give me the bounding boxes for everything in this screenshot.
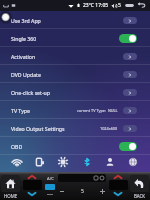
button[interactable]: DVD Update bbox=[0, 65, 150, 83]
staticText: Activation bbox=[11, 53, 36, 60]
button[interactable]: Screen cast bbox=[33, 155, 47, 169]
button[interactable]: BACK bbox=[129, 172, 150, 200]
staticText: 1024x600 bbox=[100, 126, 118, 131]
button[interactable]: Video Output Settings bbox=[0, 119, 150, 137]
staticText: current TV Type: NULL bbox=[77, 108, 118, 113]
button[interactable]: Profile bbox=[126, 155, 140, 169]
button[interactable]: TV Type bbox=[0, 101, 150, 119]
button[interactable]: Passenger temperature down bbox=[109, 190, 127, 198]
button[interactable]: Account bbox=[103, 155, 117, 169]
button[interactable]: Recent apps bbox=[125, 1, 134, 10]
button[interactable]: HOME bbox=[0, 172, 21, 200]
button[interactable]: Wi-Fi bbox=[10, 155, 24, 169]
staticText: 5 bbox=[118, 2, 121, 9]
staticText: 5 bbox=[81, 188, 84, 195]
staticText: Video Output Settings bbox=[11, 125, 65, 132]
button[interactable]: OBD bbox=[0, 137, 150, 155]
button[interactable]: A/C bbox=[43, 172, 57, 200]
staticText: A/C bbox=[47, 176, 54, 182]
button[interactable]: Driver temperature up bbox=[23, 173, 41, 180]
button[interactable]: Use 3rd App bbox=[0, 11, 150, 29]
button[interactable]: Back bbox=[137, 1, 146, 10]
button[interactable]: Brightness bbox=[56, 155, 70, 169]
staticText: TV Type bbox=[11, 107, 30, 114]
button[interactable]: Fan up bbox=[98, 187, 107, 196]
button[interactable]: Activation bbox=[0, 47, 150, 65]
staticText: Single 360 bbox=[11, 35, 37, 42]
button[interactable]: Single 360 bbox=[0, 29, 150, 47]
staticText: OBD bbox=[11, 143, 23, 150]
staticText: 23°C 17:05 bbox=[83, 2, 109, 9]
staticText: HOME bbox=[4, 193, 18, 199]
staticText: BACK bbox=[134, 193, 146, 199]
staticText: Use 3rd App bbox=[11, 17, 41, 24]
button[interactable]: Fan down bbox=[57, 187, 66, 196]
staticText: DVD Update bbox=[11, 71, 41, 78]
button[interactable]: Driver temperature down bbox=[23, 190, 41, 198]
button[interactable]: Passenger temperature up bbox=[109, 173, 127, 180]
staticText: One-click set-up bbox=[11, 89, 50, 96]
button[interactable]: Bluetooth bbox=[80, 155, 94, 169]
button[interactable]: One-click set-up bbox=[0, 83, 150, 101]
